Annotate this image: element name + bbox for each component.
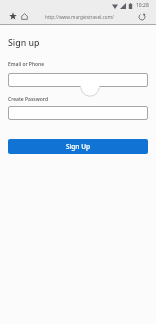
staticText: Sign up (8, 37, 40, 49)
button[interactable]: Sign Up (8, 139, 148, 154)
staticText: 10:28 (136, 2, 149, 9)
button[interactable] (8, 73, 148, 87)
staticText: http://www.margiestravel.com/ (45, 14, 114, 20)
button[interactable]: http://www.margiestravel.com/ (0, 10, 156, 24)
staticText: Sign Up (66, 142, 90, 151)
button[interactable] (8, 106, 148, 120)
staticText: Email or Phone (8, 61, 45, 68)
staticText: Create Password (8, 96, 48, 103)
